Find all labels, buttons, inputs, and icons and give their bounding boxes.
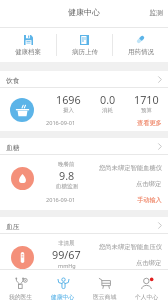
- button[interactable]: 非清晨: [0, 234, 168, 289]
- staticText: 健康中心: [51, 293, 75, 300]
- button[interactable]: 我的医生: [0, 270, 42, 300]
- staticText: 预算: [141, 107, 152, 114]
- other: 个人中心: [141, 277, 154, 289]
- staticText: 血糖监测: [56, 183, 78, 190]
- staticText: 1696: [56, 92, 81, 107]
- staticText: 查看更多: [137, 119, 162, 127]
- other: 医云商城: [99, 277, 112, 289]
- staticText: 医云商城: [93, 293, 117, 300]
- staticText: 个人中心: [135, 293, 159, 300]
- button[interactable]: 个人中心: [126, 270, 168, 300]
- button[interactable]: 晚餐前: [0, 155, 168, 210]
- staticText: 监测: [149, 8, 163, 17]
- button[interactable]: 点击绑定: [136, 180, 162, 188]
- staticText: 1710: [134, 92, 159, 107]
- staticText: 血糖: [6, 143, 20, 152]
- staticText: 手动输入: [137, 196, 162, 204]
- staticText: 2016-09-01: [46, 119, 76, 127]
- staticText: 饮食: [6, 76, 20, 85]
- button[interactable]: 点击绑定: [136, 259, 162, 267]
- staticText: 非清晨: [58, 240, 75, 247]
- other: 我的医生: [15, 277, 28, 289]
- staticText: 健康档案: [15, 48, 41, 56]
- button[interactable]: 血压: [0, 217, 168, 234]
- button[interactable]: 1696: [0, 88, 168, 131]
- staticText: 点击绑定: [136, 180, 162, 188]
- button[interactable]: 监测: [144, 4, 168, 21]
- staticText: 您尚未绑定智能血糖仪: [99, 164, 162, 172]
- staticText: 您尚未绑定智能血压仪: [99, 243, 162, 251]
- button[interactable]: 查看更多: [137, 119, 168, 127]
- staticText: 消耗: [102, 107, 113, 114]
- staticText: 9.8: [59, 168, 75, 183]
- other: 健康中心: [57, 277, 70, 289]
- staticText: 2016-09-01: [46, 196, 76, 204]
- staticText: 血压: [6, 222, 20, 231]
- button[interactable]: 病历上传: [57, 28, 112, 62]
- staticText: 健康中心: [68, 7, 100, 17]
- staticText: 点击绑定: [136, 259, 162, 267]
- staticText: mmHg: [58, 262, 76, 269]
- staticText: 99/67: [52, 247, 81, 262]
- staticText: 病历上传: [72, 48, 98, 56]
- staticText: 0.0: [100, 92, 116, 107]
- button[interactable]: 手动输入: [137, 196, 168, 204]
- button[interactable]: 饮食: [0, 71, 168, 88]
- staticText: 我的医生: [9, 293, 33, 300]
- button[interactable]: 用药情况: [113, 28, 168, 62]
- staticText: 摄入: [63, 107, 74, 114]
- staticText: 晚餐前: [58, 161, 75, 168]
- button[interactable]: 健康档案: [0, 28, 56, 62]
- button[interactable]: 健康中心: [42, 270, 84, 300]
- staticText: 用药情况: [128, 48, 154, 56]
- button[interactable]: 血糖: [0, 138, 168, 155]
- button[interactable]: 医云商城: [84, 270, 126, 300]
